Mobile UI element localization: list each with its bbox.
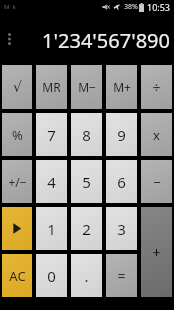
staticText: 4 (47, 172, 56, 192)
staticText: ÷ (152, 78, 161, 97)
button[interactable]: 7 (36, 113, 67, 156)
staticText: . (84, 266, 89, 286)
button[interactable]: 8 (71, 113, 102, 156)
button[interactable]: ÷ (141, 65, 172, 109)
button[interactable]: +/− (2, 160, 32, 203)
button[interactable]: More options (2, 28, 16, 50)
button[interactable]: 4 (36, 160, 67, 203)
staticText: 5 (82, 172, 91, 192)
staticText: − (153, 173, 161, 191)
staticText: AC (9, 267, 26, 285)
staticText: 10:53 (147, 1, 171, 13)
staticText: M k (4, 3, 16, 11)
staticText: √ (13, 79, 22, 95)
button[interactable]: + (141, 207, 172, 297)
button[interactable]: 1 (36, 207, 67, 250)
button[interactable]: x (141, 113, 172, 156)
staticText: + (152, 243, 161, 262)
button[interactable]: 5 (71, 160, 102, 203)
staticText: 8 (82, 125, 91, 145)
button[interactable]: AC (2, 254, 32, 297)
staticText: M− (78, 79, 96, 95)
staticText: 3 (117, 219, 126, 239)
staticText: 0 (47, 266, 56, 286)
button[interactable]: − (141, 160, 172, 203)
staticText: = (117, 266, 126, 285)
button[interactable]: Evaluate (2, 207, 32, 250)
staticText: 1 (47, 219, 56, 239)
button[interactable]: = (106, 254, 137, 297)
staticText: 2 (82, 219, 91, 239)
staticText: 6 (117, 172, 126, 192)
button[interactable]: 0 (36, 254, 67, 297)
button[interactable]: M+ (106, 65, 137, 109)
button[interactable]: √ (2, 65, 32, 109)
button[interactable]: 6 (106, 160, 137, 203)
staticText: 38% (124, 2, 138, 12)
button[interactable]: 3 (106, 207, 137, 250)
staticText: x (153, 126, 160, 144)
staticText: M+ (113, 79, 131, 95)
button[interactable]: % (2, 113, 32, 156)
staticText: % (12, 126, 23, 144)
staticText: MR (42, 79, 61, 95)
staticText: 7 (47, 125, 56, 145)
button[interactable]: MR (36, 65, 67, 109)
button[interactable]: . (71, 254, 102, 297)
staticText: 1'234'567'890 (42, 27, 170, 54)
button[interactable]: 2 (71, 207, 102, 250)
staticText: 9 (117, 125, 126, 145)
button[interactable]: M− (71, 65, 102, 109)
staticText: +/− (8, 174, 27, 190)
button[interactable]: 9 (106, 113, 137, 156)
